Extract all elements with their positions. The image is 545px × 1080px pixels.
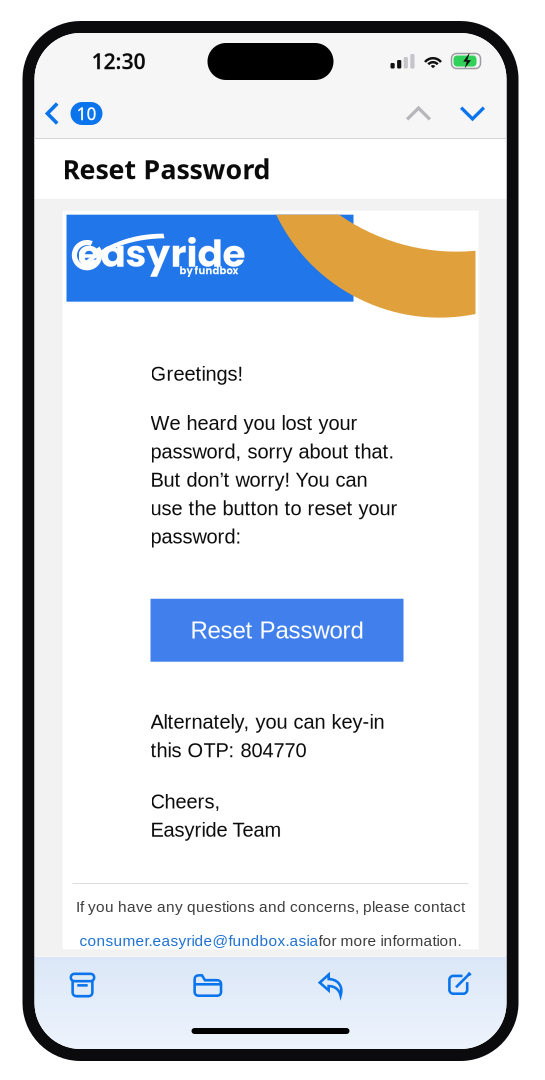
- button[interactable]: Next message: [445, 97, 499, 130]
- staticText: Cheers, Easyride Team: [150, 790, 281, 841]
- button[interactable]: Move to folder: [162, 962, 254, 1008]
- staticText: consumer.easyride@fundbox.asia: [79, 932, 318, 949]
- staticText: Reset Password: [190, 617, 363, 644]
- button[interactable]: Reset Password: [150, 599, 403, 662]
- staticText: easyride: [77, 228, 245, 280]
- staticText: Greetings!: [150, 363, 243, 385]
- button[interactable]: Compose: [412, 962, 504, 1008]
- staticText: 12:30: [91, 47, 145, 75]
- button[interactable]: 10: [34, 94, 102, 133]
- staticText: If you have any questions and concerns, …: [76, 898, 465, 915]
- staticText: Alternately, you can key-in this OTP: 80…: [150, 711, 384, 761]
- button[interactable]: Previous message: [391, 97, 445, 130]
- staticText: We heard you lost your password, sorry a…: [150, 412, 397, 548]
- button[interactable]: Reply: [287, 962, 379, 1008]
- staticText: by fundbox: [179, 264, 238, 278]
- staticText: 10: [76, 102, 96, 125]
- staticText: Reset Password: [62, 151, 270, 187]
- staticText: for more information.: [318, 932, 461, 949]
- button[interactable]: Archive: [36, 962, 128, 1008]
